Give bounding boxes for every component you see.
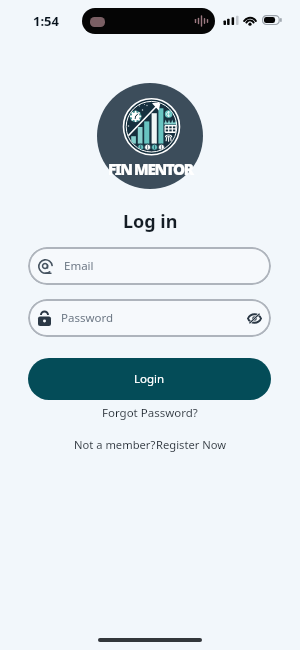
button[interactable]: Email [28, 247, 271, 285]
staticText: Not a member? [74, 437, 156, 452]
staticText: Register Now [156, 437, 227, 452]
button[interactable]: Login [28, 358, 271, 400]
button[interactable]: Forgot Password? [98, 404, 202, 422]
button[interactable]: Show password [247, 312, 262, 325]
staticText: Forgot Password? [102, 405, 198, 421]
staticText: FIN MENTOR [108, 159, 193, 180]
staticText: 1:54 [33, 12, 59, 30]
staticText: Log in [123, 209, 178, 234]
button[interactable]: Register Now [156, 437, 227, 452]
staticText: Password [61, 310, 114, 326]
staticText: Email [64, 258, 94, 274]
staticText: Login [134, 371, 165, 387]
button[interactable]: Password [28, 299, 271, 337]
